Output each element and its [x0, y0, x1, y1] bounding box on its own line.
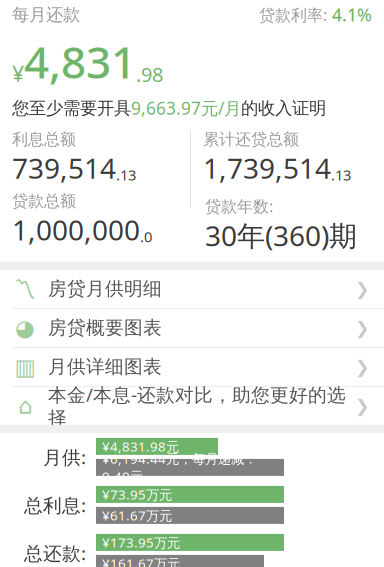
staticText: 总利息: [24, 492, 86, 517]
staticText: 的收入证明 [241, 97, 326, 119]
button[interactable]: 〽 [0, 270, 384, 308]
staticText: 房贷概要图表 [48, 316, 162, 339]
staticText: 您至少需要开具 [12, 97, 131, 119]
staticText: ¥161.67万元 [102, 554, 180, 567]
staticText: 本金/本息-还款对比，助您更好的选择 [48, 382, 346, 430]
staticText: .13 [116, 165, 136, 184]
button[interactable]: ⌂ [0, 386, 384, 425]
staticText: 房贷月供明细 [48, 277, 162, 300]
staticText: 739,514 [12, 149, 116, 186]
staticText: .0 [140, 227, 152, 246]
staticText: 30年(360)期 [205, 217, 357, 254]
staticText: ¥6,194.44元，每月递减：9.49元 [102, 450, 257, 485]
staticText: ❯ [355, 396, 370, 416]
staticText: .13 [331, 165, 351, 184]
staticText: 贷款利率: [259, 4, 327, 25]
staticText: 总还款: [24, 540, 86, 565]
staticText: 每月还款 [12, 4, 80, 25]
staticText: 9,663.97元/月 [131, 97, 241, 120]
staticText: ¥61.67万元 [102, 506, 172, 524]
staticText: 累计还贷总额 [203, 130, 299, 149]
staticText: ▥ [14, 354, 35, 380]
staticText: ¥73.95万元 [102, 485, 172, 503]
staticText: 贷款年数: [205, 195, 273, 217]
staticText: ◕ [15, 315, 35, 341]
staticText: 月供: [43, 444, 86, 469]
staticText: 4.1% [327, 3, 372, 26]
staticText: ¥173.95万元 [102, 533, 180, 551]
staticText: 1,739,514 [203, 149, 331, 186]
staticText: ⌂ [18, 393, 32, 419]
button[interactable]: ◕ [0, 308, 384, 347]
staticText: ¥ [12, 59, 24, 88]
staticText: 利息总额 [12, 130, 76, 149]
staticText: ❯ [355, 357, 370, 377]
staticText: .98 [136, 61, 163, 88]
staticText: ❯ [355, 318, 370, 338]
staticText: 1,000,000 [12, 211, 140, 248]
button[interactable]: ▥ [0, 347, 384, 386]
staticText: ¥4,831.98元 [102, 437, 179, 455]
staticText: ❯ [355, 279, 370, 299]
staticText: 贷款总额 [12, 191, 76, 211]
staticText: 4,831 [24, 32, 136, 91]
staticText: 〽 [13, 278, 36, 300]
staticText: 月供详细图表 [48, 355, 162, 378]
